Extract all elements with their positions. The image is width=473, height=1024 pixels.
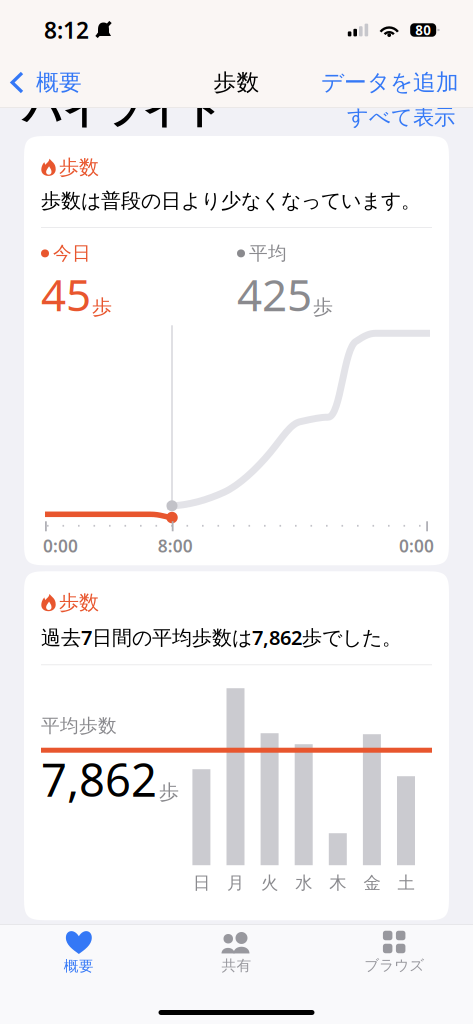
staticText: 木 <box>329 872 346 893</box>
staticText: 歩 <box>159 780 179 804</box>
staticText: 0:00 <box>399 534 434 557</box>
staticText: 過去7日間の平均歩数は7,862歩でした。 <box>41 624 402 650</box>
staticText: 45 <box>41 265 91 323</box>
staticText: 0:00 <box>43 534 78 557</box>
staticText: 歩数 <box>213 69 259 96</box>
staticText: 平均 <box>249 242 287 265</box>
button[interactable]: 概要 <box>0 927 158 977</box>
staticText: 概要 <box>36 69 82 96</box>
button[interactable]: データを追加 <box>307 60 473 104</box>
button[interactable]: 共有 <box>158 927 315 977</box>
staticText: データを追加 <box>321 69 459 96</box>
staticText: ハイライト <box>23 86 223 133</box>
staticText: 歩数 <box>59 155 99 180</box>
staticText: 火 <box>261 872 278 893</box>
staticText: 425 <box>237 265 312 323</box>
staticText: 概要 <box>64 957 94 975</box>
staticText: 月 <box>227 872 244 893</box>
staticText: 歩数は普段の日より少なくなっています。 <box>41 189 421 213</box>
staticText: 共有 <box>221 956 251 974</box>
staticText: 7,862 <box>41 749 157 809</box>
staticText: 土 <box>397 872 414 893</box>
staticText: 歩数 <box>59 590 99 615</box>
button[interactable]: ブラウズ <box>315 927 473 977</box>
staticText: 水 <box>295 872 312 893</box>
staticText: 歩 <box>313 295 333 319</box>
staticText: 平均歩数 <box>41 714 117 737</box>
button[interactable]: 概要 <box>0 60 92 104</box>
staticText: 8:12 <box>44 15 89 45</box>
staticText: 80 <box>415 21 431 39</box>
staticText: 今日 <box>53 242 91 265</box>
staticText: すべて表示 <box>347 104 455 130</box>
button[interactable]: すべて表示 <box>343 100 459 134</box>
staticText: 日 <box>193 872 210 893</box>
staticText: 金 <box>363 872 380 893</box>
staticText: 8:00 <box>158 534 193 557</box>
staticText: ブラウズ <box>364 956 424 974</box>
staticText: 歩 <box>92 295 112 319</box>
